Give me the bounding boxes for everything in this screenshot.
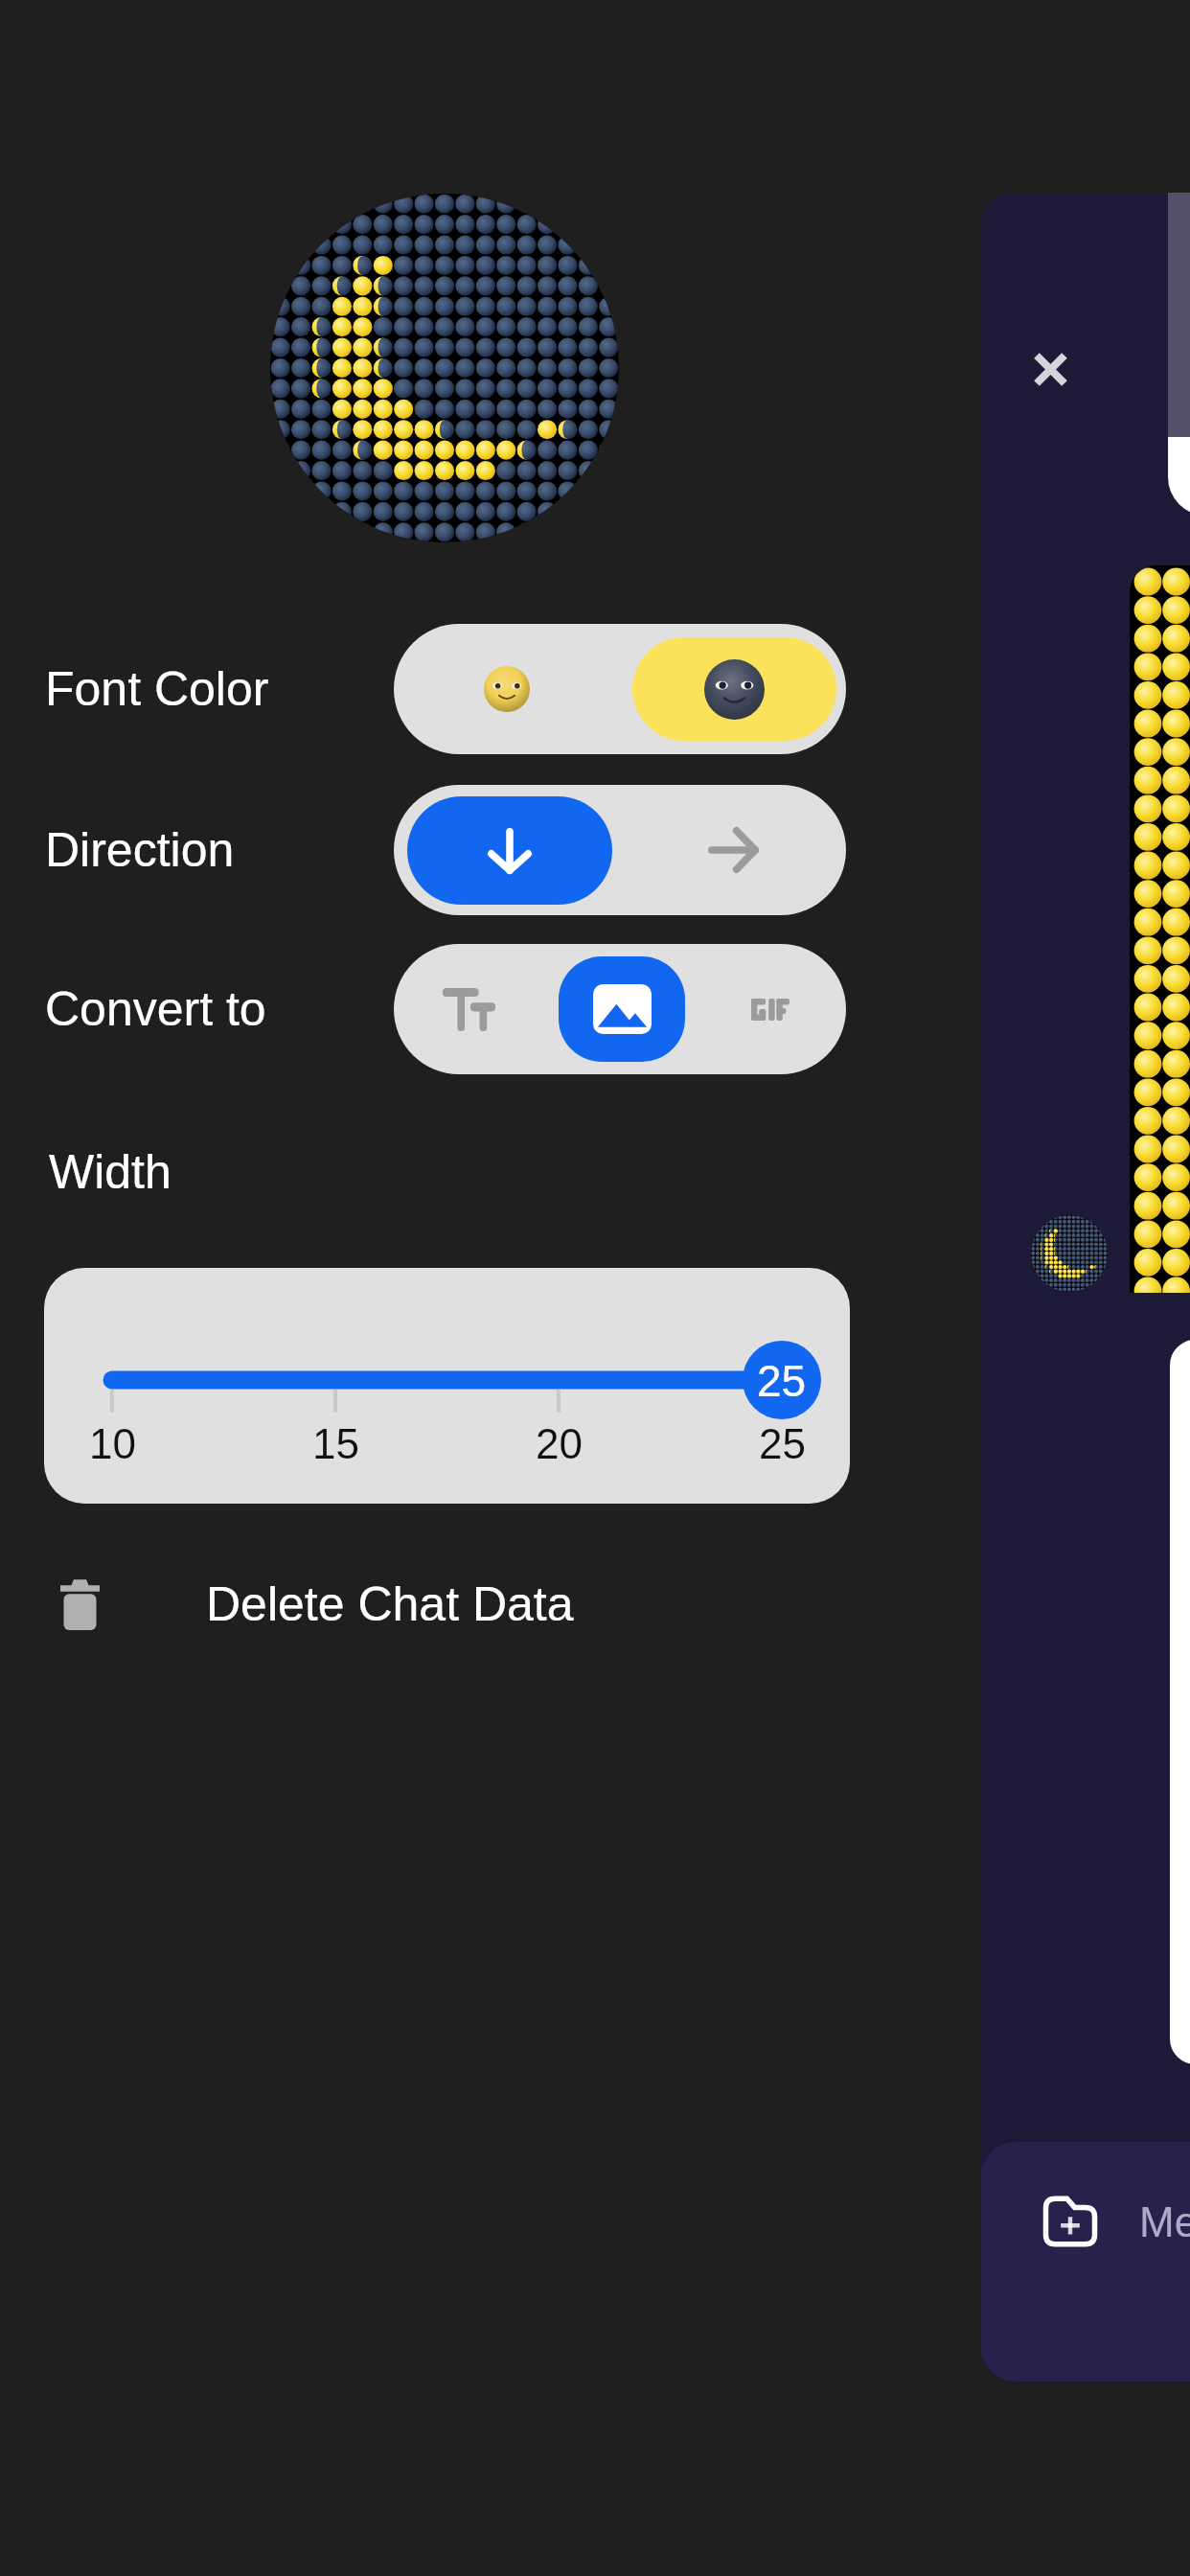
staticText: 10 xyxy=(89,1420,136,1467)
staticText: 20 xyxy=(536,1420,583,1467)
staticText: 15 xyxy=(312,1420,359,1467)
button[interactable]: Convert to text xyxy=(394,944,544,1074)
button[interactable]: Convert to GIF xyxy=(695,944,846,1074)
staticText: Font Color xyxy=(45,662,269,716)
button[interactable]: Vertical direction xyxy=(407,796,612,905)
button[interactable]: Avatar preview xyxy=(270,194,619,542)
staticText: Direction xyxy=(45,823,235,877)
button[interactable]: Light font color xyxy=(394,624,620,754)
staticText: 25 xyxy=(757,1356,807,1405)
staticText: Delete Chat Data xyxy=(206,1577,574,1631)
staticText: Width xyxy=(49,1145,172,1199)
staticText: 25 xyxy=(759,1420,806,1467)
button[interactable]: Close xyxy=(1012,331,1088,407)
staticText: Convert to xyxy=(45,982,266,1036)
button[interactable]: Dark font color xyxy=(632,637,836,741)
button[interactable]: Convert to image xyxy=(559,956,685,1062)
button[interactable]: Messages xyxy=(981,2142,1190,2381)
button[interactable]: Delete Chat Data xyxy=(34,1551,667,1658)
button[interactable]: 25 xyxy=(44,1268,850,1504)
button[interactable]: Horizontal direction xyxy=(620,785,846,915)
staticText: Messages xyxy=(1139,2198,1190,2245)
